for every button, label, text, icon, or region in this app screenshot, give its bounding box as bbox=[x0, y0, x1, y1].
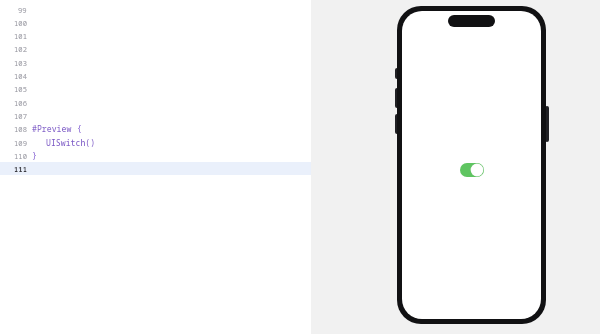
button[interactable]: Toggle switch, on bbox=[460, 163, 484, 177]
staticText: 102 bbox=[14, 44, 27, 54]
staticText: UISwitch() bbox=[46, 137, 96, 148]
staticText: 109 bbox=[14, 138, 27, 148]
staticText: 101 bbox=[14, 31, 27, 41]
staticText: } bbox=[32, 150, 37, 161]
staticText: 111 bbox=[14, 164, 27, 174]
staticText: 106 bbox=[14, 98, 27, 108]
staticText: #Preview bbox=[32, 123, 72, 134]
staticText: { bbox=[72, 123, 82, 134]
staticText: 103 bbox=[14, 58, 27, 68]
staticText: 110 bbox=[14, 151, 27, 161]
staticText: 100 bbox=[14, 18, 27, 28]
staticText: 107 bbox=[14, 111, 27, 121]
staticText: 104 bbox=[14, 71, 27, 81]
staticText: 105 bbox=[14, 84, 27, 94]
staticText: 99 bbox=[18, 5, 27, 15]
staticText: 108 bbox=[14, 124, 27, 134]
